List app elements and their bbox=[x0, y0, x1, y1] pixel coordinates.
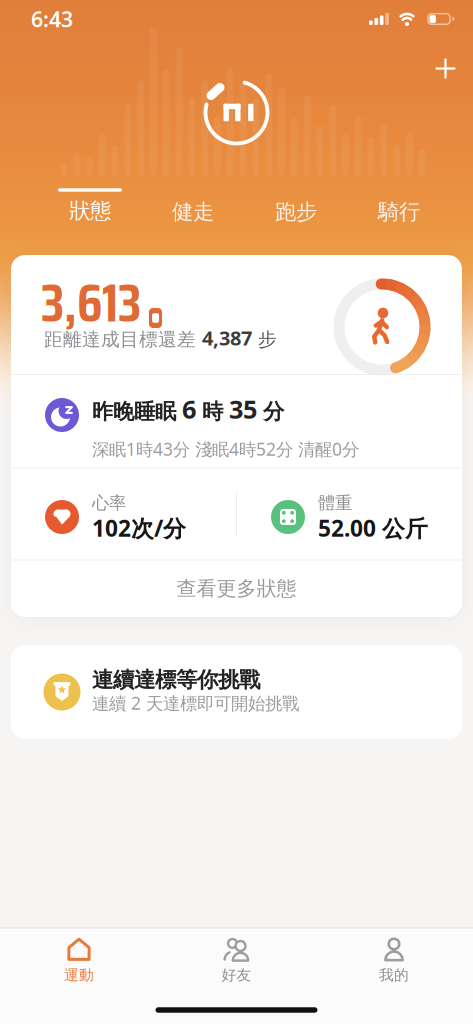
button[interactable]: 我的 bbox=[334, 931, 454, 989]
button[interactable]: 好友 bbox=[176, 931, 296, 989]
staticText: 狀態 bbox=[69, 198, 111, 224]
staticText: 運動 bbox=[64, 966, 94, 984]
button[interactable]: 昨晚睡眠 bbox=[11, 374, 462, 467]
staticText: 騎行 bbox=[378, 199, 420, 225]
staticText: 6:43 bbox=[31, 5, 73, 33]
staticText: 分 bbox=[257, 399, 284, 425]
staticText: 好友 bbox=[221, 966, 251, 984]
staticText: 體重 bbox=[318, 492, 352, 514]
button[interactable]: 健走 bbox=[148, 190, 238, 234]
staticText: 查看更多狀態 bbox=[176, 576, 296, 601]
staticText: 我的 bbox=[379, 966, 409, 984]
staticText: 時 bbox=[196, 399, 229, 425]
staticText: 昨晚睡眠 bbox=[92, 399, 182, 425]
button[interactable]: 跑步 bbox=[251, 190, 341, 234]
staticText: 3,613 bbox=[41, 261, 141, 345]
staticText: 6 bbox=[182, 392, 196, 426]
staticText: 連續達標等你挑戰 bbox=[92, 667, 260, 693]
staticText: 35 bbox=[229, 392, 257, 426]
button[interactable]: 連續達標等你挑戰 bbox=[11, 645, 462, 739]
staticText: 4,387 bbox=[202, 324, 252, 351]
button[interactable]: 體重 bbox=[236, 468, 462, 560]
staticText: 距離達成目標還差 bbox=[44, 328, 202, 351]
staticText: 步 bbox=[252, 328, 277, 351]
button[interactable]: 狀態 bbox=[45, 183, 135, 227]
staticText: 跑步 bbox=[275, 199, 317, 225]
staticText: 102次/分 bbox=[92, 513, 186, 543]
staticText: 健走 bbox=[172, 199, 214, 225]
button[interactable]: 騎行 bbox=[354, 190, 444, 234]
button[interactable]: 新增 bbox=[427, 50, 463, 86]
staticText: 52.00 公斤 bbox=[318, 513, 428, 543]
button[interactable]: 心率 bbox=[11, 468, 236, 560]
staticText: 心率 bbox=[92, 492, 126, 514]
staticText: 深眠1時43分 淺眠4時52分 清醒0分 bbox=[92, 437, 359, 460]
staticText: 連續 2 天達標即可開始挑戰 bbox=[92, 691, 299, 714]
button[interactable]: 運動 bbox=[19, 931, 139, 989]
button[interactable]: 查看更多狀態 bbox=[11, 560, 462, 616]
